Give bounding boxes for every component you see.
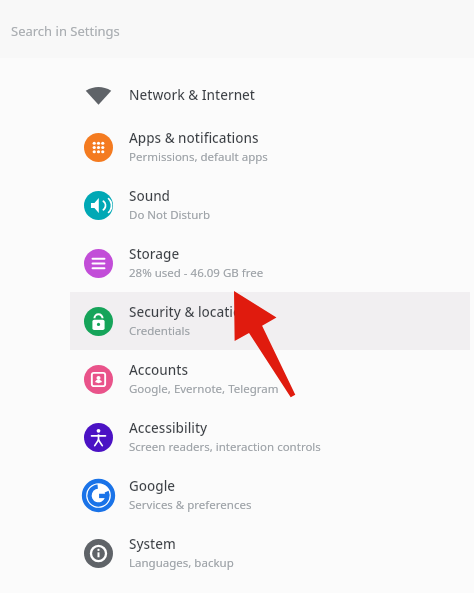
- staticText: Security & location: [129, 303, 250, 321]
- staticText: Credentials: [129, 323, 190, 339]
- staticText: Apps & notifications: [129, 129, 259, 147]
- button[interactable]: Apps & notifications: [0, 118, 474, 176]
- staticText: Permissions, default apps: [129, 149, 268, 165]
- staticText: Search in Settings: [11, 22, 120, 40]
- staticText: Screen readers, interaction controls: [129, 439, 321, 455]
- button[interactable]: Security & location: [0, 292, 474, 350]
- button[interactable]: Accounts: [0, 350, 474, 408]
- button[interactable]: Accessibility: [0, 408, 474, 466]
- button[interactable]: Network & Internet: [0, 72, 474, 118]
- button[interactable]: Google: [0, 466, 474, 524]
- button[interactable]: Sound: [0, 176, 474, 234]
- staticText: Storage: [129, 245, 180, 263]
- staticText: Accounts: [129, 361, 189, 379]
- staticText: Languages, backup: [129, 555, 234, 571]
- staticText: Network & Internet: [129, 86, 256, 104]
- staticText: Do Not Disturb: [129, 207, 211, 223]
- staticText: System: [129, 535, 176, 553]
- staticText: Google, Evernote, Telegram: [129, 381, 279, 397]
- staticText: Services & preferences: [129, 497, 252, 513]
- staticText: Accessibility: [129, 419, 208, 437]
- staticText: Sound: [129, 187, 170, 205]
- staticText: Google: [129, 477, 176, 495]
- staticText: 28% used - 46.09 GB free: [129, 265, 264, 281]
- button[interactable]: Storage: [0, 234, 474, 292]
- button[interactable]: Search in Settings: [0, 0, 474, 58]
- button[interactable]: System: [0, 524, 474, 582]
